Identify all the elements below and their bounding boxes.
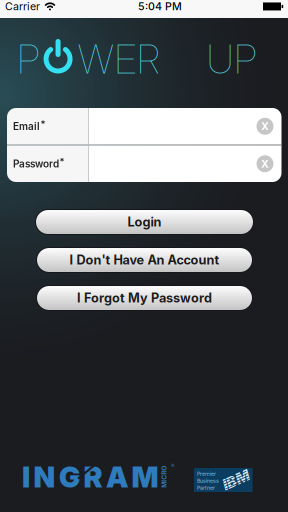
staticText: WER: [78, 35, 160, 83]
staticText: 5:04 PM: [138, 0, 182, 13]
staticText: MICRO: [153, 473, 175, 481]
staticText: Premier: [197, 470, 216, 477]
staticText: I Forgot My Password: [77, 290, 212, 306]
staticText: Login: [127, 214, 161, 230]
staticText: Partner: [197, 485, 215, 491]
button[interactable]: Email: [7, 108, 281, 144]
staticText: Carrier: [5, 0, 40, 13]
staticText: INGRAM: [22, 460, 158, 494]
staticText: X: [261, 120, 269, 133]
button[interactable]: Clear text: [256, 155, 273, 172]
staticText: I Don't Have An Account: [69, 252, 219, 268]
button[interactable]: Password: [7, 145, 281, 182]
staticText: *: [59, 156, 64, 167]
button[interactable]: I Don't Have An Account: [36, 247, 253, 273]
staticText: *: [40, 118, 45, 129]
staticText: Business: [197, 478, 219, 484]
staticText: Email: [13, 120, 40, 132]
staticText: ®: [171, 463, 175, 469]
button[interactable]: Login: [35, 209, 254, 235]
button[interactable]: I Forgot My Password: [36, 285, 253, 311]
staticText: Password: [13, 158, 59, 170]
button[interactable]: Clear text: [256, 118, 273, 135]
staticText: X: [261, 157, 269, 170]
staticText: IBM: [222, 471, 250, 489]
staticText: UP: [207, 35, 256, 83]
staticText: P: [17, 35, 39, 83]
